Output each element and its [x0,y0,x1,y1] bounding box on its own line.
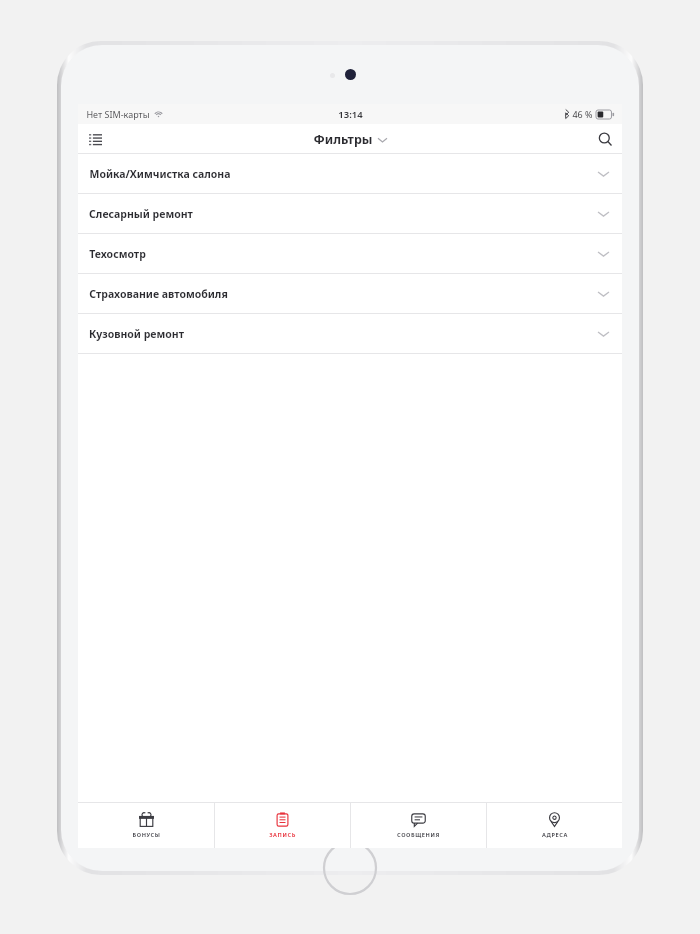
button[interactable]: Техосмотр [78,234,622,274]
button[interactable]: АДРЕСА [487,803,622,848]
staticText: Нет SIM-карты [86,108,150,120]
button[interactable]: Menu [78,124,112,154]
button[interactable]: Search [588,124,622,154]
button[interactable]: Страхование автомобиля [78,274,622,314]
staticText: Кузовной ремонт [89,327,184,341]
staticText: АДРЕСА [542,831,568,839]
staticText: Слесарный ремонт [89,207,193,221]
staticText: Страхование автомобиля [89,287,228,301]
staticText: Фильтры [313,131,373,148]
staticText: ЗАПИСЬ [269,831,296,839]
button[interactable]: Мойка/Химчистка салона [78,154,622,194]
button[interactable]: ЗАПИСЬ [215,803,350,848]
button[interactable]: Кузовной ремонт [78,314,622,354]
button[interactable]: СООБЩЕНИЯ [351,803,486,848]
staticText: Мойка/Химчистка салона [89,167,231,181]
button[interactable]: Слесарный ремонт [78,194,622,234]
button[interactable]: БОНУСЫ [78,803,214,848]
button[interactable]: Фильтры [313,131,387,148]
staticText: СООБЩЕНИЯ [397,831,440,839]
staticText: Техосмотр [89,247,146,261]
staticText: 13:14 [338,108,363,121]
staticText: БОНУСЫ [132,831,161,839]
staticText: 46 % [572,108,593,120]
